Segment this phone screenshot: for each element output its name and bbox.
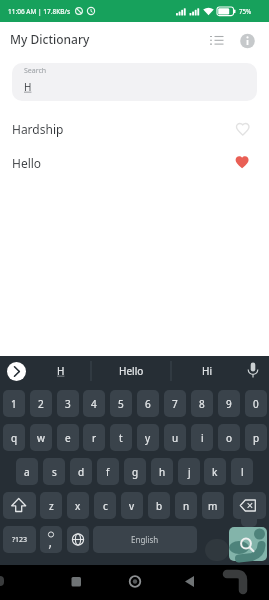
button[interactable]: H xyxy=(47,361,75,381)
button[interactable] xyxy=(179,571,201,593)
button[interactable]: English xyxy=(93,526,197,553)
staticText: 7 xyxy=(172,397,178,411)
button[interactable]: e xyxy=(57,424,79,451)
button[interactable]: d xyxy=(70,458,92,485)
staticText: Hi xyxy=(202,364,212,378)
staticText: e xyxy=(65,431,71,445)
button[interactable]: s xyxy=(43,458,65,485)
button[interactable]: c xyxy=(94,492,116,519)
button[interactable]: n xyxy=(175,492,197,519)
staticText: g xyxy=(132,465,139,479)
button[interactable]: k xyxy=(204,458,226,485)
button[interactable]: 4 xyxy=(83,390,105,417)
staticText: ?123 xyxy=(12,535,28,545)
button[interactable]: a xyxy=(16,458,38,485)
button[interactable]: 7 xyxy=(164,390,186,417)
staticText: h xyxy=(159,465,166,479)
button[interactable]: t xyxy=(110,424,132,451)
staticText: Hardship xyxy=(12,121,64,137)
staticText: Search xyxy=(24,66,47,76)
staticText: y xyxy=(145,431,151,445)
staticText: Hello xyxy=(119,364,144,378)
button[interactable] xyxy=(233,492,266,519)
button[interactable]: b xyxy=(148,492,170,519)
staticText: 9 xyxy=(226,397,232,411)
staticText: v xyxy=(129,499,135,513)
button[interactable]: Hardship xyxy=(0,112,269,146)
staticText: My Dictionary xyxy=(10,31,90,47)
button[interactable]: Hello xyxy=(0,146,269,180)
button[interactable]: l xyxy=(231,458,253,485)
button[interactable]: 8 xyxy=(191,390,213,417)
staticText: 0 xyxy=(253,397,259,411)
button[interactable]: p xyxy=(245,424,267,451)
staticText: r xyxy=(92,431,97,445)
button[interactable]: 6 xyxy=(137,390,159,417)
button[interactable]: 2 xyxy=(30,390,52,417)
staticText: English xyxy=(131,534,159,545)
button[interactable]: Hello xyxy=(101,361,161,381)
button[interactable]: 1 xyxy=(3,390,25,417)
staticText: q xyxy=(11,431,18,445)
button[interactable]: Hi xyxy=(186,361,228,381)
staticText: o xyxy=(226,431,233,445)
staticText: s xyxy=(52,465,57,479)
button[interactable] xyxy=(67,526,89,553)
button[interactable]: w xyxy=(30,424,52,451)
button[interactable]: 5 xyxy=(110,390,132,417)
button[interactable]: 0 xyxy=(245,390,267,417)
staticText: b xyxy=(156,499,163,513)
staticText: c xyxy=(103,499,108,513)
staticText: z xyxy=(49,499,54,513)
staticText: 8 xyxy=(199,397,205,411)
button[interactable] xyxy=(232,152,254,174)
button[interactable] xyxy=(124,571,146,593)
staticText: w xyxy=(37,431,45,445)
button[interactable]: u xyxy=(164,424,186,451)
button[interactable]: y xyxy=(137,424,159,451)
button[interactable]: o xyxy=(218,424,240,451)
staticText: 1 xyxy=(11,397,17,411)
staticText: d xyxy=(78,465,85,479)
staticText: p xyxy=(253,431,260,445)
button[interactable] xyxy=(243,361,263,381)
button[interactable] xyxy=(7,362,26,381)
button[interactable]: v xyxy=(121,492,143,519)
button[interactable]: q xyxy=(3,424,25,451)
button[interactable]: 9 xyxy=(218,390,240,417)
button[interactable] xyxy=(40,526,62,553)
staticText: m xyxy=(208,499,218,513)
staticText: x xyxy=(75,499,81,513)
staticText: 3 xyxy=(65,397,71,411)
staticText: a xyxy=(24,465,30,479)
staticText: k xyxy=(212,465,218,479)
button[interactable] xyxy=(232,119,254,141)
staticText: H xyxy=(57,364,65,378)
button[interactable]: ?123 xyxy=(3,526,36,553)
button[interactable] xyxy=(238,31,258,51)
staticText: 4 xyxy=(91,397,97,411)
button[interactable]: g xyxy=(124,458,146,485)
staticText: i xyxy=(201,431,204,445)
button[interactable]: h xyxy=(151,458,173,485)
staticText: Hello xyxy=(12,155,42,171)
staticText: n xyxy=(183,499,190,513)
staticText: 6 xyxy=(145,397,151,411)
button[interactable] xyxy=(3,492,36,519)
staticText: 2 xyxy=(38,397,44,411)
button[interactable] xyxy=(206,31,226,49)
button[interactable]: z xyxy=(40,492,62,519)
button[interactable]: i xyxy=(191,424,213,451)
button[interactable] xyxy=(229,527,267,561)
button[interactable]: 3 xyxy=(57,390,79,417)
button[interactable]: j xyxy=(178,458,200,485)
staticText: 75% xyxy=(239,7,252,15)
staticText: f xyxy=(106,465,110,479)
button[interactable]: r xyxy=(83,424,105,451)
staticText: l xyxy=(241,465,244,479)
button[interactable] xyxy=(12,63,257,101)
button[interactable]: m xyxy=(202,492,224,519)
button[interactable] xyxy=(66,571,88,593)
button[interactable]: x xyxy=(67,492,89,519)
button[interactable]: f xyxy=(97,458,119,485)
